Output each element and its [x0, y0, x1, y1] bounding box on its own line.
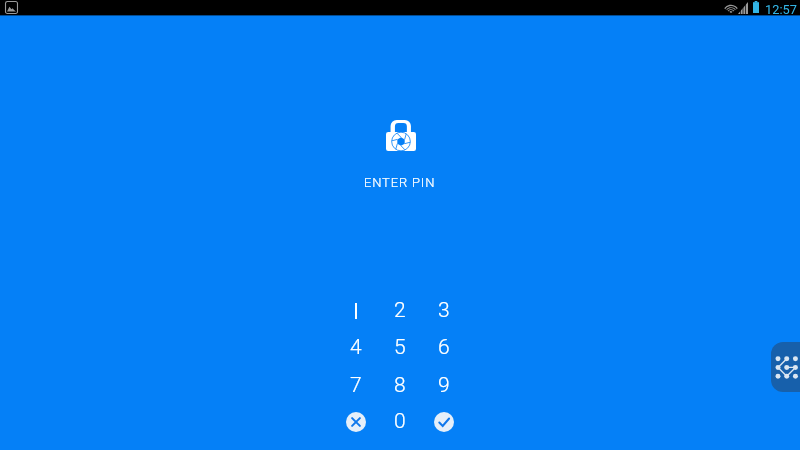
button[interactable]: Cancel: [334, 403, 378, 440]
button[interactable]: Pattern unlock: [771, 342, 800, 392]
staticText: 6: [438, 335, 450, 360]
button[interactable]: 3: [422, 292, 466, 329]
staticText: ENTER PIN: [364, 175, 436, 190]
button[interactable]: 8: [378, 367, 422, 404]
button[interactable]: 0: [378, 403, 422, 440]
button[interactable]: 7: [334, 367, 378, 404]
button[interactable]: Confirm: [422, 403, 466, 440]
button[interactable]: 1: [334, 292, 378, 329]
staticText: 9: [438, 373, 450, 398]
button[interactable]: 6: [422, 329, 466, 366]
staticText: 7: [350, 373, 362, 398]
staticText: 2: [394, 298, 406, 323]
staticText: 12:57: [765, 2, 797, 17]
button[interactable]: 2: [378, 292, 422, 329]
staticText: 0: [394, 409, 406, 434]
button[interactable]: 9: [422, 367, 466, 404]
button[interactable]: 5: [378, 329, 422, 366]
staticText: 5: [394, 335, 406, 360]
staticText: 8: [394, 373, 406, 398]
button[interactable]: 4: [334, 329, 378, 366]
staticText: 3: [438, 298, 450, 323]
staticText: 4: [350, 335, 362, 360]
other: Locked: [386, 120, 416, 151]
